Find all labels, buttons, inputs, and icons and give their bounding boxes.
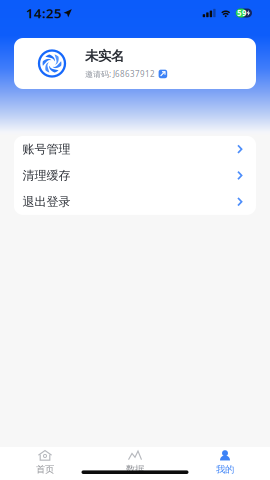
staticText: 数据 xyxy=(126,463,144,475)
button[interactable]: 数据 xyxy=(90,452,180,473)
staticText: 账号管理 xyxy=(22,142,70,156)
button[interactable]: 首页 xyxy=(0,452,90,473)
staticText: 我的 xyxy=(216,464,234,475)
button[interactable]: 我的 xyxy=(180,452,270,473)
staticText: 未实名 xyxy=(85,48,124,64)
staticText: 14:25 xyxy=(26,4,62,22)
staticText: 退出登录 xyxy=(22,194,70,209)
staticText: 59 xyxy=(237,8,247,18)
button[interactable]: 账号管理 xyxy=(14,136,256,162)
button[interactable]: 退出登录 xyxy=(14,189,256,215)
staticText: 清理缓存 xyxy=(22,168,70,183)
button[interactable]: 清理缓存 xyxy=(14,162,256,189)
staticText: 首页 xyxy=(36,464,54,475)
staticText: 邀请码: J68637912 xyxy=(85,69,155,79)
